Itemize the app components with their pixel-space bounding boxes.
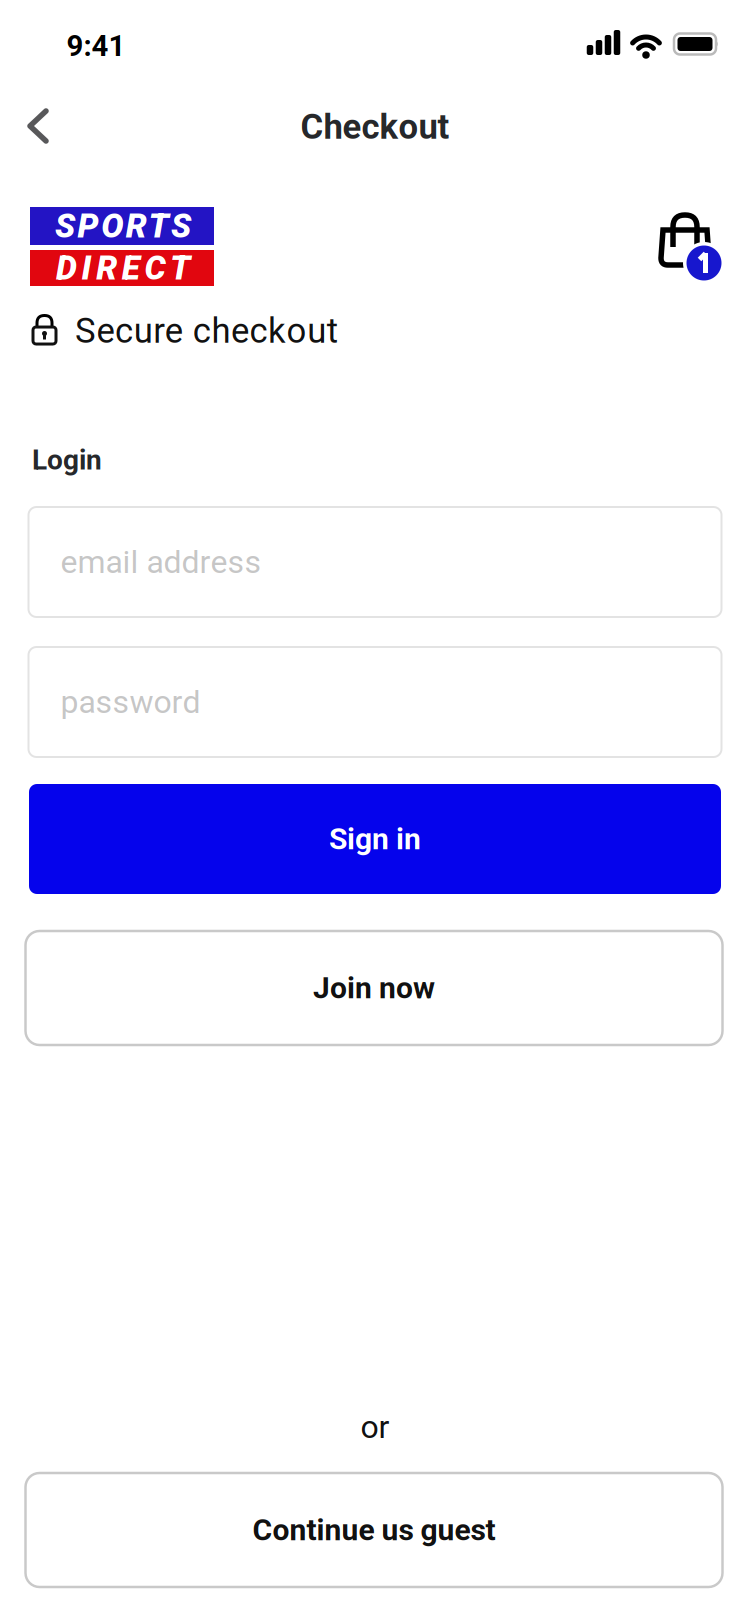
button[interactable]: Join now (25, 931, 722, 1045)
staticText: Sign in (329, 821, 421, 857)
staticText: password (60, 683, 200, 721)
staticText: 9:41 (66, 29, 125, 63)
button[interactable]: Continue us guest (25, 1473, 722, 1587)
button[interactable]: password (28, 647, 721, 757)
staticText: DIRECT (56, 248, 190, 288)
staticText: Continue us guest (252, 1512, 495, 1548)
staticText: Secure checkout (75, 311, 338, 351)
staticText: Login (32, 444, 102, 476)
staticText: SPORTS (55, 206, 191, 246)
staticText: email address (60, 543, 261, 581)
button[interactable]: Sign in (29, 784, 721, 894)
button[interactable]: email address (28, 507, 721, 617)
button[interactable] (648, 199, 728, 283)
staticText: Join now (313, 970, 435, 1006)
button[interactable] (16, 104, 60, 148)
staticText: or (360, 1408, 389, 1446)
staticText: Checkout (300, 107, 449, 147)
